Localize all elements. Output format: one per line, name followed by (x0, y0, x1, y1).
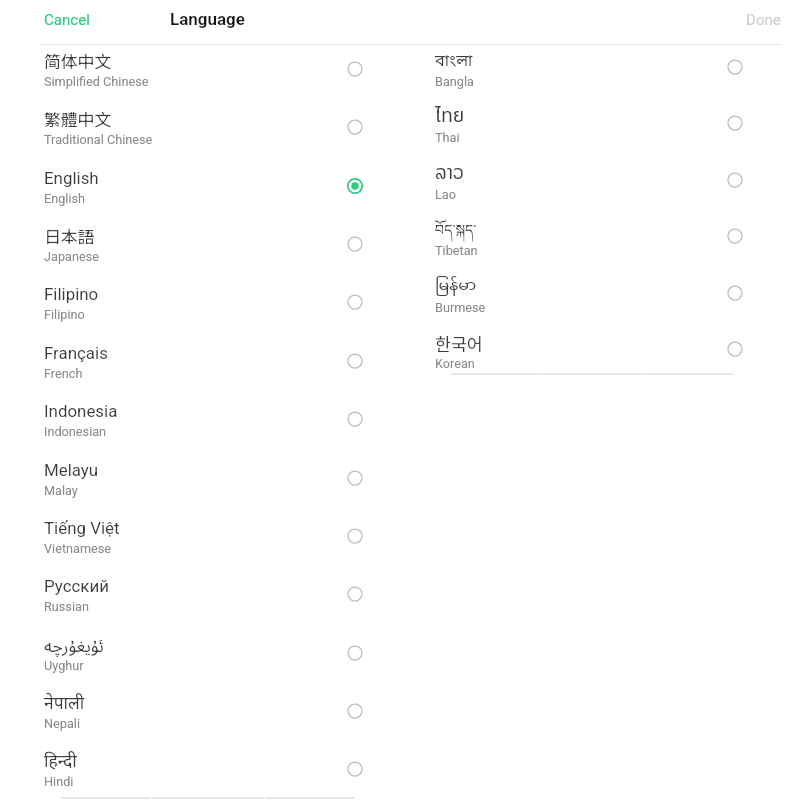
staticText: Vietnamese (44, 541, 112, 556)
staticText: မြန်မာ (435, 275, 477, 297)
button[interactable]: 繁體中文 (44, 104, 364, 162)
staticText: Korean (435, 356, 475, 371)
other: Select Russian (346, 585, 364, 603)
staticText: Filipino (44, 284, 99, 304)
staticText: བོད་སྐད་ (435, 214, 477, 254)
staticText: Russian (44, 599, 89, 614)
other: Select Korean (726, 340, 744, 358)
other: Select Bangla (726, 58, 744, 76)
button[interactable]: Melayu (44, 455, 364, 513)
staticText: Lao (435, 187, 456, 202)
button[interactable]: Cancel (44, 11, 90, 29)
button[interactable]: বাংলা (435, 46, 744, 102)
staticText: Done (746, 11, 781, 29)
staticText: Japanese (44, 249, 99, 264)
staticText: Thai (435, 130, 460, 145)
other: Select Indonesian (346, 410, 364, 428)
button[interactable]: नेपाली (44, 688, 364, 746)
button[interactable]: Tiếng Việt (44, 513, 364, 571)
staticText: বাংলা (435, 51, 473, 73)
button[interactable]: ไทย (435, 102, 744, 158)
other: Select Filipino (346, 293, 364, 311)
button[interactable]: English (44, 163, 364, 221)
other: Select Japanese (346, 235, 364, 253)
staticText: Malay (44, 483, 78, 498)
staticText: Hindi (44, 774, 74, 789)
staticText: ไทย (435, 101, 465, 130)
staticText: Bangla (435, 74, 474, 89)
staticText: Simplified Chinese (44, 74, 149, 89)
staticText: Melayu (44, 460, 99, 480)
staticText: Tiếng Việt (44, 518, 120, 538)
button[interactable]: မြန်မာ (435, 272, 744, 328)
staticText: Tibetan (435, 243, 478, 258)
button[interactable]: Русский (44, 571, 364, 629)
staticText: 한국어 (435, 331, 483, 356)
staticText: 简体中文 (44, 49, 112, 73)
staticText: Burmese (435, 300, 486, 315)
staticText: Français (44, 343, 108, 363)
staticText: Nepali (44, 716, 80, 731)
other: Select Vietnamese (346, 527, 364, 545)
staticText: French (44, 366, 83, 381)
staticText: Indonesian (44, 424, 107, 439)
other: Select French (346, 352, 364, 370)
button[interactable]: Done (746, 11, 781, 29)
staticText: Cancel (44, 11, 90, 29)
other: Select Tibetan (726, 227, 744, 245)
button[interactable]: ລາວ (435, 159, 744, 215)
button[interactable]: ئۇيغۇرچە (44, 630, 364, 688)
button[interactable]: 日本語 (44, 221, 364, 279)
button[interactable]: हिन्दी (44, 746, 364, 800)
staticText: नेपाली (44, 693, 85, 716)
button[interactable]: Filipino (44, 279, 364, 337)
staticText: 繁體中文 (44, 107, 112, 131)
other: Select Traditional Chinese (346, 118, 364, 136)
other: Select Uyghur (346, 644, 364, 662)
other: Select Nepali (346, 702, 364, 720)
staticText: English (44, 191, 86, 206)
staticText: 日本語 (44, 224, 95, 248)
button[interactable]: Indonesia (44, 396, 364, 454)
other: Select Malay (346, 469, 364, 487)
button[interactable]: བོད་སྐད་ (435, 215, 744, 271)
staticText: Filipino (44, 307, 85, 322)
button[interactable]: Français (44, 338, 364, 396)
staticText: ئۇيغۇرچە (44, 628, 104, 665)
staticText: ລາວ (435, 157, 465, 188)
other: English selected (346, 177, 364, 195)
other: Select Simplified Chinese (346, 60, 364, 78)
other: Select Thai (726, 114, 744, 132)
staticText: English (44, 168, 99, 188)
other: Select Lao (726, 171, 744, 189)
staticText: Indonesia (44, 401, 118, 421)
other: Select Hindi (346, 760, 364, 778)
staticText: Traditional Chinese (44, 132, 153, 147)
staticText: हिन्दी (44, 751, 77, 774)
other: Select Burmese (726, 284, 744, 302)
staticText: Uyghur (44, 658, 84, 673)
staticText: Language (170, 9, 245, 29)
button[interactable]: 한국어 (435, 328, 744, 384)
button[interactable]: 简体中文 (44, 46, 364, 104)
staticText: Русский (44, 576, 109, 596)
